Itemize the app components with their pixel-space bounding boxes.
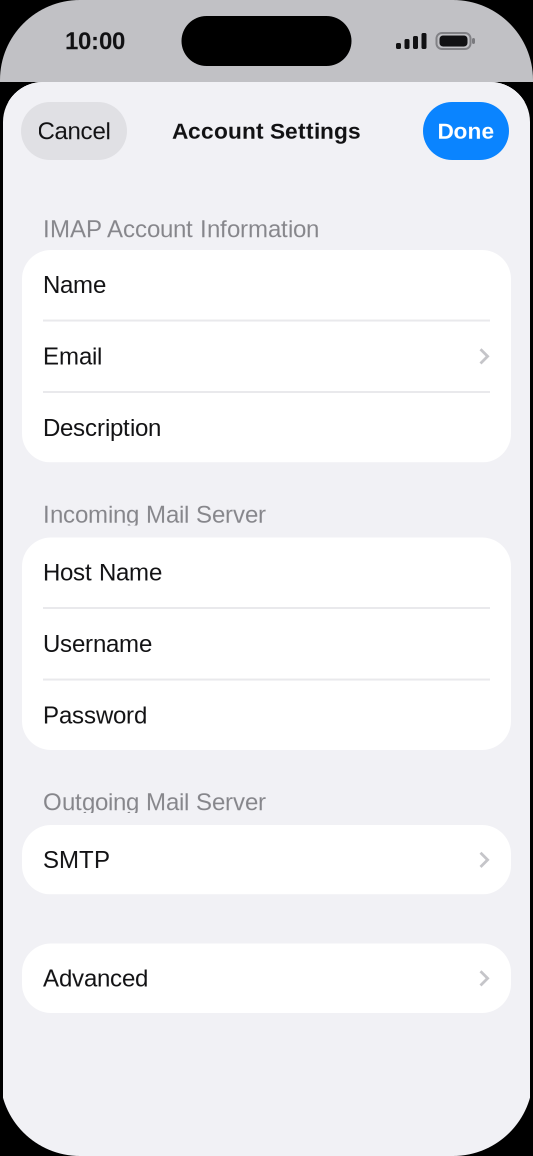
staticText: Username xyxy=(43,630,152,657)
button[interactable]: Name xyxy=(22,250,511,319)
staticText: Advanced xyxy=(43,965,148,992)
staticText: Cancel xyxy=(37,118,110,144)
staticText: Done xyxy=(437,118,494,144)
button[interactable]: Done xyxy=(423,102,509,160)
staticText: Description xyxy=(43,414,161,441)
button[interactable]: Cancel xyxy=(21,102,127,160)
staticText: Account Settings xyxy=(172,118,361,144)
staticText: IMAP Account Information xyxy=(43,216,319,242)
staticText: Host Name xyxy=(43,559,162,586)
staticText: Password xyxy=(43,702,147,729)
staticText: 10:00 xyxy=(65,28,125,54)
button[interactable]: Email xyxy=(22,321,511,391)
button[interactable]: Host Name xyxy=(22,537,511,607)
button[interactable]: Description xyxy=(22,393,511,462)
button[interactable]: Password xyxy=(22,680,511,750)
button[interactable]: Username xyxy=(22,609,511,678)
button[interactable]: SMTP xyxy=(22,825,511,894)
staticText: Outgoing Mail Server xyxy=(43,789,266,815)
staticText: SMTP xyxy=(43,846,110,873)
staticText: Email xyxy=(43,343,102,370)
staticText: Name xyxy=(43,271,106,298)
staticText: Incoming Mail Server xyxy=(43,501,266,528)
button[interactable]: Advanced xyxy=(22,943,511,1013)
